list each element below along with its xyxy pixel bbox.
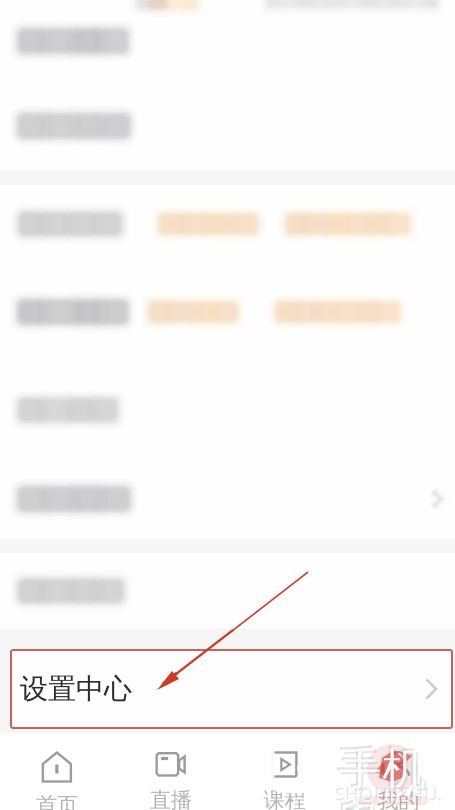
staticText: 我的 <box>377 788 419 810</box>
staticText: 课程 <box>263 787 305 810</box>
button[interactable]: 我的 <box>341 733 455 810</box>
button[interactable] <box>0 82 455 170</box>
button[interactable]: 直播 <box>114 733 228 810</box>
staticText: 设置中心 <box>20 672 132 706</box>
staticText: SHOUJISHU.COM <box>335 781 442 810</box>
button[interactable] <box>0 459 455 539</box>
staticText: 手机鼠 <box>340 744 428 810</box>
button[interactable] <box>0 0 455 82</box>
button[interactable] <box>0 361 455 459</box>
staticText: SHOUJISHU.COM <box>336 782 443 810</box>
button[interactable] <box>0 263 455 361</box>
staticText: 手机鼠 <box>338 742 426 810</box>
button[interactable] <box>0 185 455 263</box>
button[interactable] <box>0 553 455 629</box>
button[interactable]: 首页 <box>0 733 114 810</box>
staticText: 首页 <box>36 792 78 810</box>
staticText: 手机鼠 <box>336 740 424 810</box>
button[interactable]: 课程 <box>227 733 341 810</box>
staticText: 直播 <box>150 787 192 810</box>
button[interactable]: 设置中心 <box>11 650 452 728</box>
